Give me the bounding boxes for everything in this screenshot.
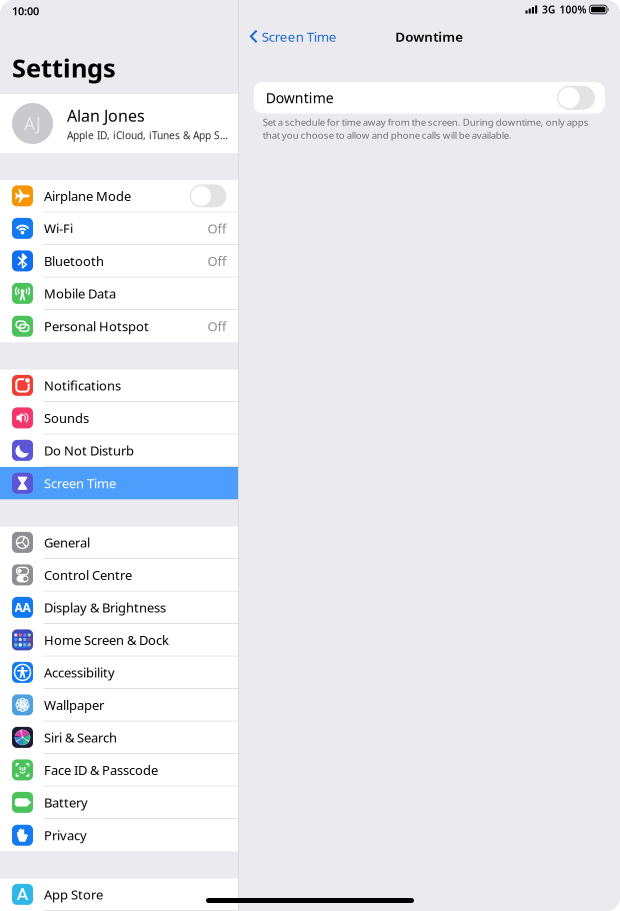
- staticText: Downtime: [266, 88, 334, 107]
- button[interactable]: Mobile Data: [0, 277, 238, 310]
- button[interactable]: Privacy: [0, 819, 238, 851]
- staticText: Siri & Search: [44, 729, 117, 746]
- staticText: AA: [14, 599, 30, 615]
- staticText: Bluetooth: [44, 252, 104, 270]
- button[interactable]: AA: [0, 591, 238, 624]
- button[interactable]: General: [0, 526, 238, 559]
- button[interactable]: Sounds: [0, 402, 238, 434]
- staticText: Display & Brightness: [44, 599, 166, 616]
- staticText: Control Centre: [44, 566, 132, 584]
- staticText: General: [44, 534, 90, 551]
- staticText: Set a schedule for time away from the sc…: [263, 115, 589, 142]
- button[interactable]: Screen Time: [239, 19, 345, 54]
- button[interactable]: Personal Hotspot: [0, 310, 238, 342]
- button[interactable]: Control Centre: [0, 559, 238, 591]
- button[interactable]: Accessibility: [0, 656, 238, 689]
- staticText: Alan Jones: [67, 105, 145, 126]
- button[interactable]: Notifications: [0, 369, 238, 402]
- staticText: Wi-Fi: [44, 220, 73, 237]
- button[interactable]: Wallpaper: [0, 689, 238, 721]
- staticText: Mobile Data: [44, 285, 116, 302]
- staticText: Privacy: [44, 826, 87, 844]
- staticText: Off: [207, 252, 226, 270]
- staticText: Screen Time: [262, 27, 337, 46]
- button[interactable]: AJ: [0, 94, 238, 153]
- staticText: AJ: [24, 112, 41, 135]
- button[interactable]: Face ID & Passcode: [0, 754, 238, 786]
- button[interactable]: Bluetooth: [0, 245, 238, 277]
- button[interactable]: [557, 86, 595, 110]
- staticText: Apple ID, iCloud, iTunes & App St…: [67, 128, 230, 142]
- staticText: App Store: [44, 886, 103, 903]
- staticText: Home Screen & Dock: [44, 631, 169, 649]
- staticText: Sounds: [44, 409, 89, 427]
- button[interactable]: Airplane Mode: [0, 180, 238, 212]
- staticText: Battery: [44, 794, 88, 811]
- staticText: Wallpaper: [44, 696, 104, 714]
- button[interactable]: Screen Time: [0, 467, 238, 499]
- staticText: Airplane Mode: [44, 187, 131, 205]
- staticText: Settings: [12, 50, 116, 85]
- button[interactable]: App Store: [0, 878, 238, 911]
- staticText: Accessibility: [44, 664, 115, 681]
- button[interactable]: Battery: [0, 786, 238, 819]
- button[interactable]: Wi-Fi: [0, 212, 238, 245]
- staticText: 100%: [559, 3, 586, 16]
- button[interactable]: Do Not Disturb: [0, 434, 238, 467]
- staticText: 10:00: [12, 4, 39, 18]
- staticText: Off: [207, 220, 226, 237]
- staticText: Notifications: [44, 377, 121, 394]
- staticText: Off: [207, 317, 226, 335]
- staticText: 3G: [542, 3, 555, 16]
- staticText: Personal Hotspot: [44, 317, 149, 335]
- staticText: Downtime: [395, 27, 463, 46]
- staticText: Screen Time: [44, 474, 116, 492]
- staticText: Do Not Disturb: [44, 442, 134, 459]
- button[interactable]: Home Screen & Dock: [0, 624, 238, 656]
- button[interactable]: Siri & Search: [0, 721, 238, 754]
- staticText: Face ID & Passcode: [44, 761, 158, 779]
